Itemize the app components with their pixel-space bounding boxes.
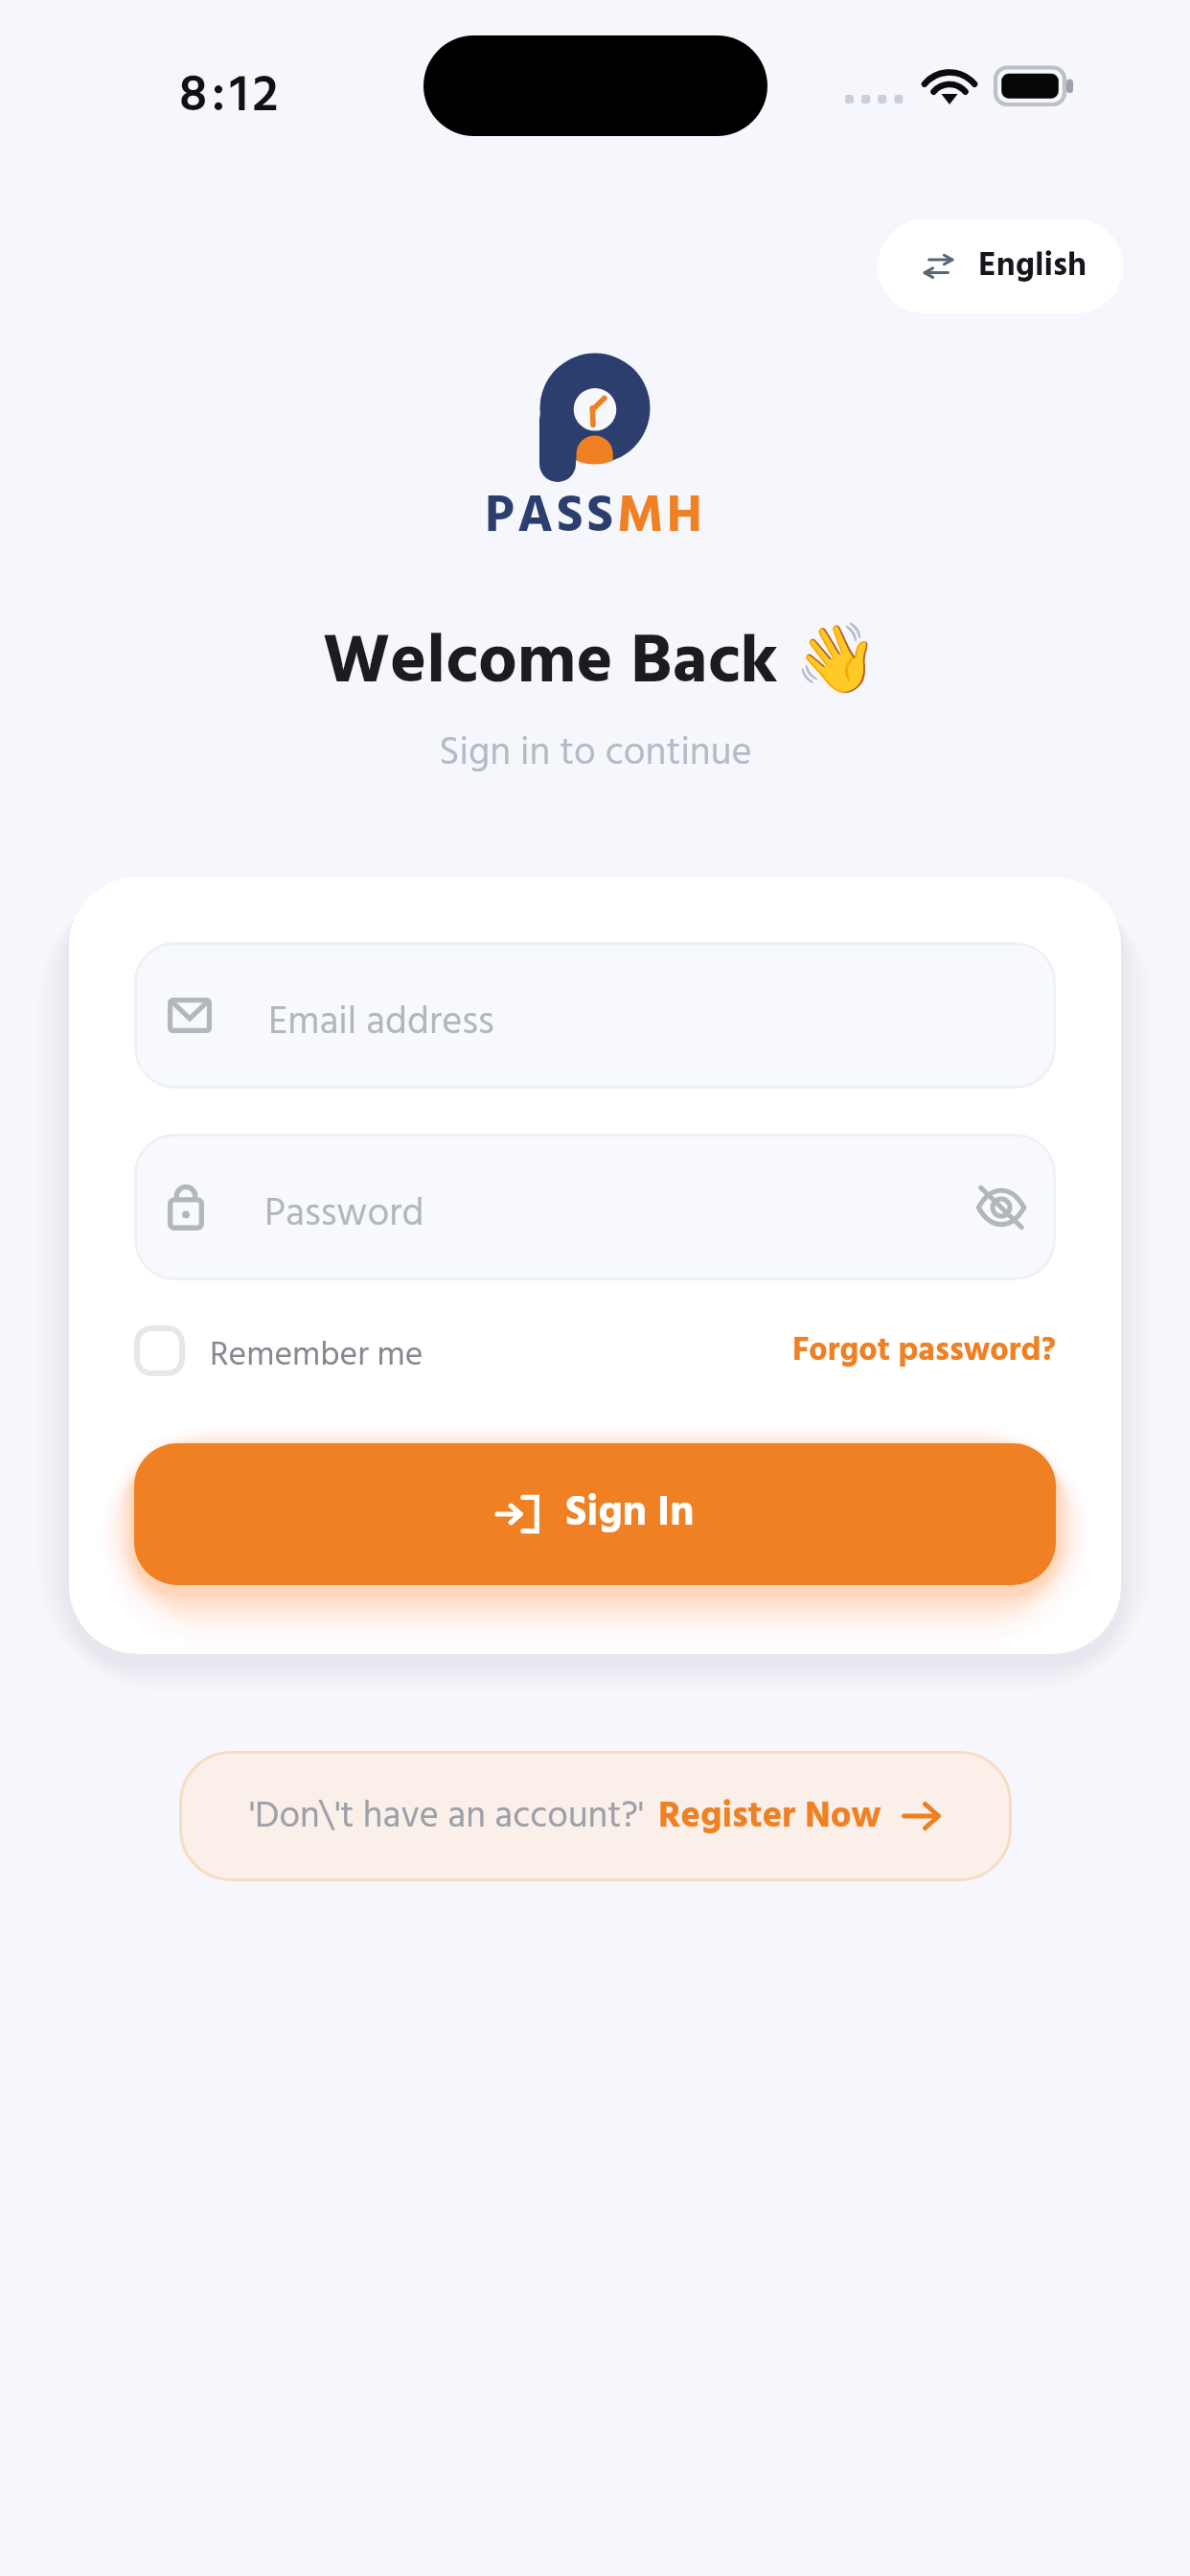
button[interactable]: Change language [878, 219, 1123, 313]
button[interactable]: Show password [973, 1184, 1028, 1230]
button[interactable]: Email address [134, 942, 1056, 1089]
staticText: Password [264, 1184, 424, 1246]
staticText: Sign In [565, 1481, 695, 1548]
staticText: PASS [485, 476, 617, 559]
staticText: English [978, 241, 1087, 293]
staticText: Forgot password? [792, 1325, 1056, 1376]
staticText: Remember me [210, 1328, 423, 1379]
staticText: 'Don\'t have an account?' [249, 1787, 644, 1846]
staticText: MH [617, 476, 706, 559]
staticText: Welcome Back [323, 609, 778, 719]
button[interactable]: Forgot password? [792, 1325, 1056, 1376]
staticText: 8:12 [179, 56, 283, 138]
button[interactable]: 'Don\'t have an account?' [179, 1751, 1012, 1881]
staticText: Sign in to continue [439, 723, 752, 785]
staticText: Email address [268, 992, 494, 1054]
staticText: 👋 [794, 619, 879, 699]
staticText: Register Now [658, 1787, 881, 1846]
button[interactable]: Sign In [134, 1443, 1056, 1585]
button[interactable]: Remember me [134, 1325, 423, 1376]
button[interactable]: Password [134, 1134, 1056, 1280]
other: Change language [923, 256, 954, 277]
